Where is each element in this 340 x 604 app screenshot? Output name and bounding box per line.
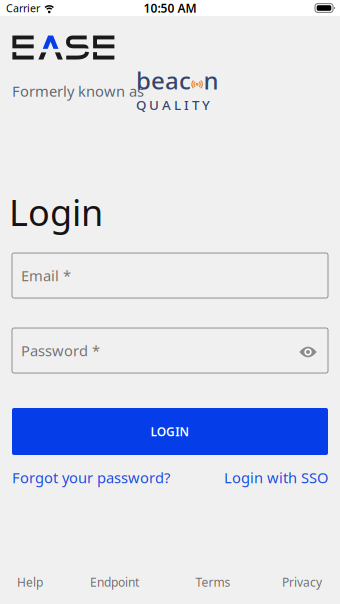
staticText: LOGIN — [150, 423, 190, 439]
staticText: Q U A L I T Y — [136, 96, 210, 114]
button[interactable]: Forgot your password? — [12, 468, 170, 487]
button[interactable]: Terms — [195, 574, 230, 590]
staticText: Formerly known as — [12, 81, 144, 101]
button[interactable]: Password * — [12, 328, 328, 373]
staticText: 10:50 AM — [143, 0, 196, 16]
button[interactable]: Privacy — [282, 574, 322, 590]
staticText: Help — [17, 574, 43, 590]
button[interactable]: Help — [17, 574, 43, 590]
staticText: Endpoint — [90, 574, 139, 590]
staticText: Login with SSO — [224, 468, 328, 487]
staticText: beac — [136, 64, 191, 96]
button[interactable]: Endpoint — [90, 574, 139, 590]
button[interactable] — [299, 346, 317, 358]
staticText: n — [204, 64, 219, 96]
staticText: Email * — [21, 266, 71, 285]
staticText: Forgot your password? — [12, 468, 170, 487]
button[interactable]: LOGIN — [12, 408, 328, 455]
button[interactable]: Login with SSO — [224, 468, 328, 487]
staticText: Carrier — [6, 1, 40, 15]
staticText: Terms — [195, 574, 230, 590]
staticText: Password * — [21, 341, 100, 360]
staticText: Privacy — [282, 574, 322, 590]
button[interactable]: Email * — [12, 253, 328, 298]
staticText: Login — [9, 188, 103, 236]
